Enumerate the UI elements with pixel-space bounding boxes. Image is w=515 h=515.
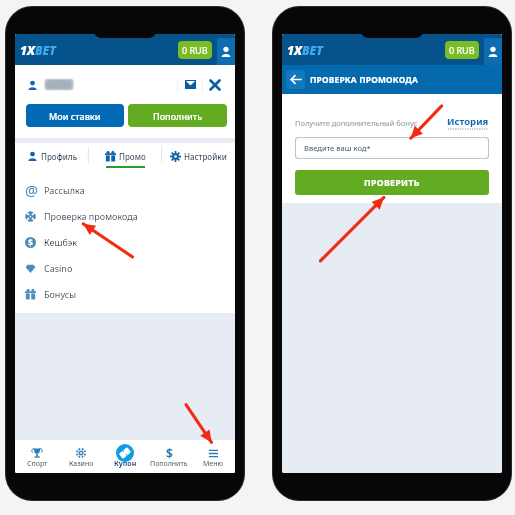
staticText: ПРОВЕРИТЬ [364, 177, 420, 189]
staticText: @ [25, 180, 36, 200]
staticText: Казино [69, 459, 94, 469]
button[interactable]: Пополнить [128, 104, 227, 127]
staticText: $ [166, 445, 173, 461]
button[interactable]: Мои ставки [26, 104, 124, 127]
staticText: Настройки [184, 151, 227, 162]
button[interactable]: История [447, 115, 489, 130]
staticText: BET [302, 42, 323, 58]
staticText: $ [28, 237, 33, 248]
staticText: Профиль [41, 151, 78, 162]
button[interactable]: Введите ваш код* [296, 138, 488, 158]
button[interactable]: 0 RUB [178, 41, 212, 59]
staticText: Мои ставки [49, 110, 101, 122]
button[interactable]: ПРОВЕРИТЬ [295, 170, 489, 195]
staticText: Кешбэк [44, 236, 78, 248]
staticText: Пополнить [150, 459, 188, 469]
button[interactable]: Спорт [15, 440, 59, 473]
button[interactable]: Messages [178, 76, 202, 93]
button[interactable]: Купон [103, 440, 147, 473]
staticText: Пополнить [153, 110, 203, 122]
button[interactable]: Back [286, 70, 305, 89]
button[interactable]: Настройки [162, 143, 235, 169]
staticText: Рассылка [44, 184, 85, 196]
button[interactable]: Профиль [15, 143, 89, 169]
button[interactable]: Проверка промокода [15, 203, 235, 229]
staticText: 1X [287, 42, 302, 58]
button[interactable]: @ [15, 177, 235, 203]
staticText: История [447, 115, 489, 128]
staticText: ПРОВЕРКА ПРОМОКОДА [310, 74, 419, 85]
button[interactable]: 0 RUB [445, 41, 479, 59]
button[interactable]: Account [484, 38, 502, 65]
staticText: Промо [119, 151, 146, 162]
staticText: Введите ваш код* [304, 143, 371, 153]
button[interactable]: $ [147, 440, 191, 473]
staticText: 0 RUB [449, 44, 475, 56]
staticText: Проверка промокода [44, 210, 138, 222]
button[interactable]: Close [203, 76, 227, 93]
staticText: BET [35, 42, 56, 58]
button[interactable]: Casino [15, 255, 235, 281]
staticText: 0 RUB [182, 44, 208, 56]
button[interactable]: Бонусы [15, 281, 235, 307]
staticText: Купон [114, 459, 137, 469]
staticText: Получите дополнительный бонус [295, 118, 418, 128]
staticText: Меню [203, 459, 224, 469]
button[interactable]: Казино [59, 440, 103, 473]
button[interactable]: Account [217, 38, 235, 65]
staticText: Casino [44, 262, 73, 274]
staticText: 1X [20, 42, 35, 58]
button[interactable]: Меню [191, 440, 235, 473]
staticText: Спорт [27, 459, 48, 469]
button[interactable]: $ [15, 229, 235, 255]
staticText: Бонусы [44, 288, 76, 300]
button[interactable]: Промо [89, 143, 162, 169]
